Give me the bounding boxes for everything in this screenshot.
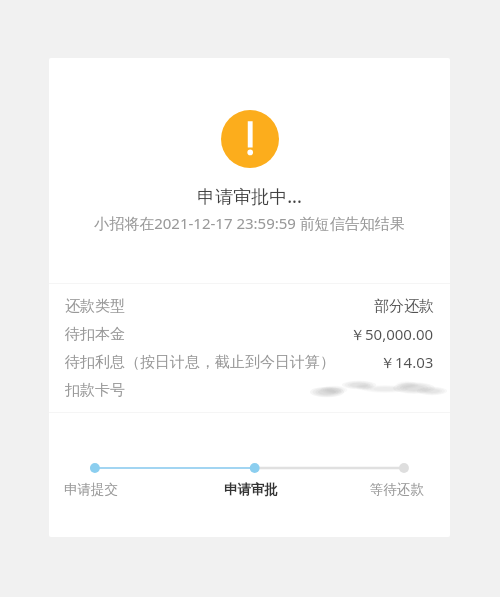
staticText: 扣款卡号: [65, 381, 125, 400]
other: Card number hidden: [307, 376, 447, 402]
button[interactable]: 还款类型: [49, 292, 450, 320]
staticText: ￥50,000.00: [350, 324, 434, 344]
staticText: ￥14.03: [380, 352, 434, 372]
other: Application pending approval: [221, 110, 279, 168]
staticText: 申请提交: [64, 481, 118, 498]
staticText: 申请审批: [224, 481, 278, 498]
button[interactable]: 申请提交: [51, 477, 131, 501]
button[interactable]: 待扣本金: [49, 320, 450, 348]
staticText: 部分还款: [374, 297, 434, 316]
button[interactable]: 扣款卡号: [49, 376, 450, 404]
button[interactable]: 待扣利息（按日计息，截止到今日计算）: [49, 348, 450, 376]
staticText: 还款类型: [65, 297, 125, 316]
staticText: 待扣利息（按日计息，截止到今日计算）: [65, 353, 335, 372]
button[interactable]: 等待还款: [357, 477, 437, 501]
staticText: 小招将在2021-12-17 23:59:59 前短信告知结果: [94, 213, 405, 233]
staticText: 等待还款: [370, 481, 424, 498]
staticText: 待扣本金: [65, 325, 125, 344]
staticText: 申请审批中...: [197, 184, 302, 208]
button[interactable]: 申请审批: [211, 477, 291, 501]
